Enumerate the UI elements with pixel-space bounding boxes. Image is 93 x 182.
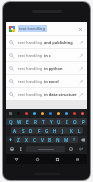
staticText: in data structure bbox=[44, 92, 77, 97]
staticText: J bbox=[62, 128, 64, 134]
staticText: N bbox=[56, 137, 60, 143]
button[interactable]: !? bbox=[70, 136, 78, 143]
staticText: text handling bbox=[18, 79, 44, 84]
staticText: P bbox=[82, 119, 85, 125]
button[interactable]: F bbox=[35, 127, 43, 134]
button[interactable]: Emoji 3 bbox=[22, 109, 30, 117]
button[interactable]: Use suggestion bbox=[77, 91, 84, 98]
staticText: S bbox=[22, 128, 25, 134]
button[interactable]: Emoji 8 bbox=[62, 109, 70, 117]
button[interactable]: Backspace bbox=[78, 136, 87, 143]
button[interactable]: Use suggestion bbox=[77, 78, 84, 85]
staticText: I bbox=[66, 119, 68, 125]
button[interactable]: text handling bbox=[6, 35, 87, 48]
button[interactable]: I bbox=[63, 118, 71, 125]
button[interactable]: Emoji 10 bbox=[78, 109, 86, 117]
staticText: A bbox=[13, 128, 17, 134]
button[interactable]: M bbox=[62, 136, 70, 143]
button[interactable]: Emoji 1 bbox=[7, 109, 14, 117]
staticText: in c bbox=[44, 53, 51, 58]
staticText: X bbox=[25, 137, 28, 143]
button[interactable]: Emoji 7 bbox=[54, 109, 62, 117]
staticText: O bbox=[73, 119, 77, 125]
button[interactable]: Clear bbox=[76, 25, 84, 33]
button[interactable]: Google bbox=[6, 22, 87, 35]
staticText: W bbox=[17, 119, 22, 125]
button[interactable]: N bbox=[54, 136, 62, 143]
staticText: text handling bbox=[18, 40, 44, 45]
staticText: in excel bbox=[44, 79, 59, 84]
staticText: !? bbox=[73, 138, 76, 142]
button[interactable]: Space bbox=[26, 146, 65, 152]
staticText: text handling bbox=[18, 66, 44, 71]
button[interactable]: G bbox=[43, 127, 51, 134]
button[interactable]: text handling bbox=[6, 48, 87, 61]
button[interactable]: S bbox=[19, 127, 27, 134]
button[interactable]: Use suggestion bbox=[77, 39, 84, 46]
button[interactable]: O bbox=[71, 118, 79, 125]
button[interactable]: Recent apps bbox=[47, 154, 67, 164]
staticText: I bbox=[20, 146, 22, 153]
button[interactable]: Q bbox=[6, 118, 15, 125]
button[interactable]: Use suggestion bbox=[77, 65, 84, 72]
button[interactable]: T bbox=[39, 118, 47, 125]
button[interactable]: Z bbox=[14, 136, 22, 143]
button[interactable]: Back bbox=[6, 154, 27, 164]
staticText: Y bbox=[50, 119, 53, 125]
staticText: Z bbox=[17, 137, 20, 143]
button[interactable]: Emoji keyboard bbox=[7, 144, 17, 154]
button[interactable]: text handling bbox=[6, 74, 87, 87]
button[interactable]: Cursor bbox=[17, 144, 25, 154]
button[interactable]: W bbox=[15, 118, 23, 125]
button[interactable]: Y bbox=[47, 118, 55, 125]
other: Google bbox=[9, 26, 15, 32]
staticText: L bbox=[78, 128, 81, 134]
button[interactable]: B bbox=[46, 136, 54, 143]
staticText: E bbox=[26, 119, 29, 125]
staticText: text handling bbox=[18, 53, 44, 58]
button[interactable]: E bbox=[23, 118, 31, 125]
staticText: F bbox=[38, 128, 41, 134]
button[interactable]: text handling bbox=[6, 61, 87, 74]
button[interactable]: Settings bbox=[66, 144, 75, 154]
button[interactable]: Emoji 5 bbox=[38, 109, 46, 117]
staticText: text handling bbox=[18, 92, 44, 97]
staticText: C bbox=[33, 137, 36, 143]
button[interactable]: R bbox=[31, 118, 39, 125]
staticText: B bbox=[48, 137, 52, 143]
button[interactable]: V bbox=[38, 136, 46, 143]
staticText: T bbox=[42, 119, 45, 125]
staticText: G bbox=[45, 128, 49, 134]
staticText: and publishing bbox=[44, 40, 73, 45]
button[interactable]: Enter bbox=[75, 144, 86, 154]
button[interactable]: Use suggestion bbox=[77, 52, 84, 59]
button[interactable]: text handling bbox=[6, 87, 87, 100]
staticText: M bbox=[64, 137, 69, 143]
button[interactable]: Emoji 6 bbox=[46, 109, 54, 117]
button[interactable]: X bbox=[22, 136, 30, 143]
staticText: Q bbox=[9, 119, 13, 125]
staticText: D bbox=[29, 128, 33, 134]
button[interactable]: Shift bbox=[6, 136, 14, 143]
button[interactable]: Switch keyboard bbox=[67, 154, 87, 164]
staticText: text handling bbox=[19, 26, 46, 32]
button[interactable]: Emoji 9 bbox=[70, 109, 78, 117]
button[interactable]: U bbox=[55, 118, 63, 125]
button[interactable]: A bbox=[11, 127, 19, 134]
staticText: V bbox=[41, 137, 44, 143]
button[interactable]: C bbox=[30, 136, 38, 143]
staticText: in python bbox=[44, 66, 63, 71]
button[interactable]: P bbox=[79, 118, 87, 125]
button[interactable]: Home bbox=[27, 154, 47, 164]
staticText: H bbox=[53, 128, 57, 134]
staticText: U bbox=[57, 119, 61, 125]
button[interactable]: K bbox=[67, 127, 75, 134]
button[interactable]: J bbox=[59, 127, 67, 134]
button[interactable]: D bbox=[27, 127, 35, 134]
staticText: R bbox=[34, 119, 37, 125]
button[interactable]: H bbox=[51, 127, 59, 134]
button[interactable]: Emoji 2 bbox=[14, 109, 22, 117]
button[interactable]: Emoji 4 bbox=[30, 109, 38, 117]
staticText: K bbox=[70, 128, 73, 134]
button[interactable]: L bbox=[75, 127, 83, 134]
